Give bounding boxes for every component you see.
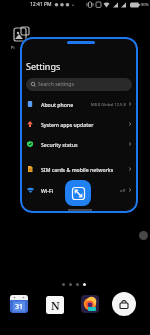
button[interactable]: System apps updater [20,114,138,134]
button[interactable]: Security status [20,134,138,154]
staticText: Pi [11,45,15,50]
staticText: MIUI Global 12.5.8 [91,102,126,107]
button[interactable]: Wi-Fi [20,180,138,200]
button[interactable] [112,292,136,316]
staticText: Search settings [38,81,74,88]
staticText: Wi-Fi [41,187,54,194]
staticText: N [51,298,60,313]
button[interactable] [65,180,91,206]
staticText: 90% [141,2,149,7]
staticText: 31 [15,302,24,312]
button[interactable]: 31 [10,295,28,313]
staticText: Settings [26,60,61,72]
staticText: 12:41 PM [30,1,52,8]
staticText: Security status [41,141,78,148]
button[interactable]: About phone [20,94,138,114]
staticText: About phone [41,101,74,108]
button[interactable]: SIM cards & mobile networks [20,159,138,179]
staticText: SIM cards & mobile networks [41,166,114,173]
button[interactable] [81,295,99,313]
staticText: System apps updater [41,121,94,128]
button[interactable]: N [46,296,64,314]
staticText: off [120,188,126,193]
button[interactable]: Search settings [26,78,132,91]
